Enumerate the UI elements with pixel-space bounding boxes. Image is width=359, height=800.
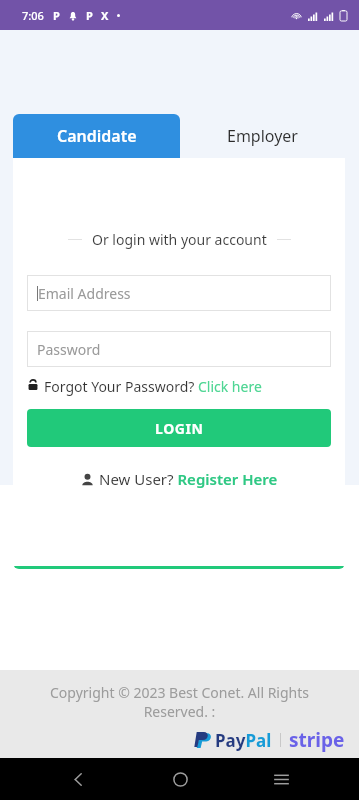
button[interactable]: Candidate: [13, 114, 180, 158]
staticText: Or login with your account: [92, 230, 267, 249]
button[interactable]: Employer: [180, 114, 345, 158]
staticText: Forgot Your Password? Click here: [44, 377, 262, 396]
staticText: Candidate: [57, 125, 137, 147]
staticText: New User? Register Here: [99, 469, 278, 489]
button[interactable]: Forgot Your Password? Click here: [27, 377, 331, 396]
staticText: stripe: [289, 727, 345, 753]
staticText: 7:06: [22, 8, 44, 23]
staticText: P: [53, 8, 60, 23]
staticText: Employer: [227, 125, 298, 147]
button[interactable]: LOGIN: [27, 409, 331, 447]
staticText: PayPal: [215, 729, 272, 752]
button[interactable]: Email Address: [27, 275, 331, 311]
staticText: LOGIN: [155, 419, 204, 438]
staticText: P: [86, 8, 93, 23]
staticText: Email Address: [38, 284, 131, 303]
button[interactable]: Recent apps: [258, 758, 304, 800]
staticText: Copyright © 2023 Best Conet. All Rights …: [24, 683, 335, 721]
staticText: X: [101, 8, 109, 23]
button[interactable]: New User? Register Here: [75, 467, 284, 491]
button[interactable]: Password: [27, 331, 331, 367]
button[interactable]: Home: [157, 758, 203, 800]
staticText: Password: [37, 340, 101, 359]
button[interactable]: Back: [55, 758, 101, 800]
